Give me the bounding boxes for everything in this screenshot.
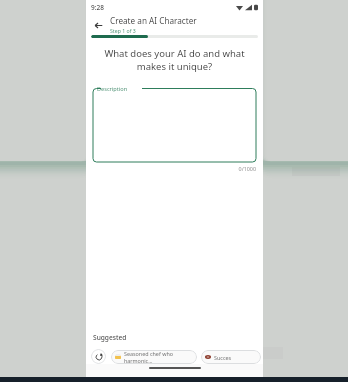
button[interactable]: Seasoned chef who harmonic... bbox=[111, 350, 197, 364]
staticText: Suggested bbox=[93, 333, 127, 342]
button[interactable]: Description input bbox=[93, 84, 256, 162]
staticText: Succes bbox=[214, 354, 232, 361]
staticText: Create an AI Character bbox=[110, 15, 197, 26]
button[interactable]: Succes bbox=[201, 350, 261, 364]
button[interactable]: Refresh suggestions bbox=[91, 349, 106, 364]
staticText: Seasoned chef who harmonic... bbox=[124, 350, 193, 364]
staticText: 0/1000 bbox=[93, 165, 256, 172]
staticText: Description bbox=[97, 85, 128, 93]
staticText: 9:28 bbox=[91, 3, 104, 12]
button[interactable]: Back bbox=[90, 17, 106, 33]
staticText: What does your AI do and what makes it u… bbox=[94, 47, 255, 73]
staticText: Step 1 of 3 bbox=[110, 27, 136, 34]
